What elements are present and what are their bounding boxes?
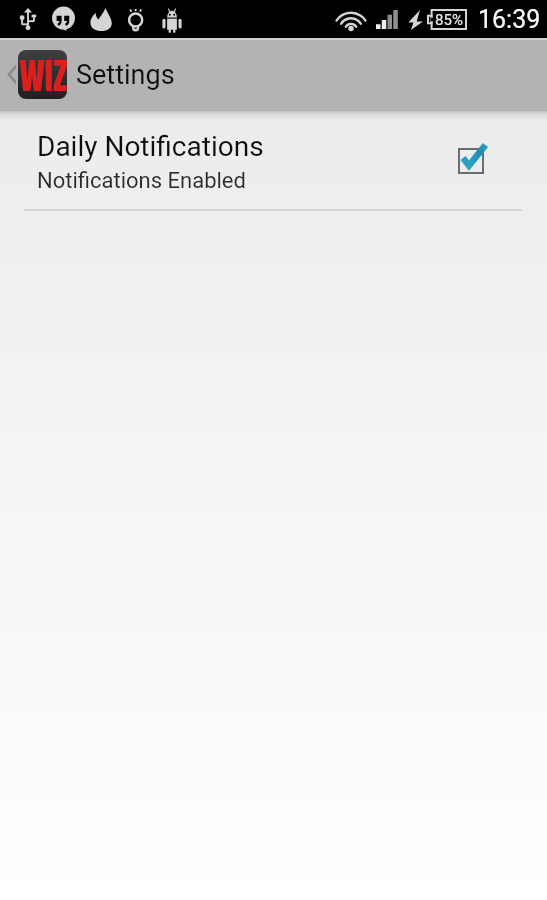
staticText: Daily Notifications xyxy=(37,130,264,163)
button[interactable]: Daily Notifications toggle xyxy=(452,136,498,184)
staticText: 16:39 xyxy=(478,5,541,34)
button[interactable]: Daily Notifications xyxy=(0,111,547,209)
staticText: Notifications Enabled xyxy=(37,168,246,194)
staticText: 85% xyxy=(435,11,463,29)
staticText: WIZ xyxy=(19,50,67,98)
staticText: Settings xyxy=(76,59,175,91)
button[interactable]: Navigate up xyxy=(0,50,67,99)
